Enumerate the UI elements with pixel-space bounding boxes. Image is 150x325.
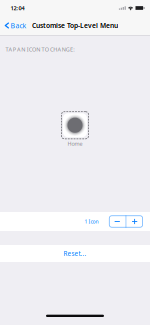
button[interactable]: Home icon [61,111,89,139]
staticText: TAP AN ICON TO CHANGE: [5,46,74,53]
staticText: Reset... [63,249,86,258]
staticText: 12:04 [10,4,24,12]
staticText: 1 Icon [85,218,99,225]
button[interactable]: Increase [126,215,143,228]
staticText: Back [10,21,26,30]
staticText: Customise Top-Level Menu [32,21,118,30]
button[interactable]: Reset... [0,245,150,262]
staticText: Home [67,140,82,147]
button[interactable]: Decrease [109,215,126,228]
button[interactable]: Back [0,18,29,33]
